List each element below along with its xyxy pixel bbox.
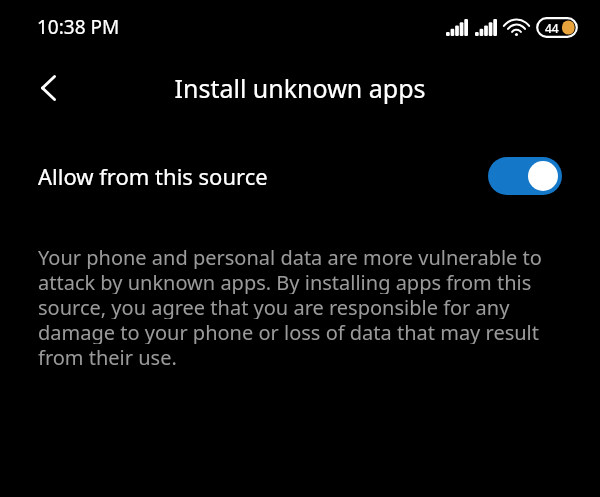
staticText: damage to your phone or loss of data tha… <box>38 319 539 344</box>
staticText: Allow from this source <box>38 161 488 191</box>
staticText: Your phone and personal data are more vu… <box>38 244 542 269</box>
staticText: from their use. <box>38 344 177 369</box>
button[interactable]: Allow from this source <box>0 146 600 206</box>
staticText: 10:38 PM <box>37 14 120 40</box>
staticText: 44 <box>545 20 559 36</box>
staticText: Install unknown apps <box>0 71 600 105</box>
button[interactable]: Back <box>24 64 72 112</box>
staticText: source, you agree that you are responsib… <box>38 294 510 319</box>
staticText: attack by unknown apps. By installing ap… <box>38 269 532 294</box>
button[interactable]: Allow from this source <box>488 157 562 195</box>
